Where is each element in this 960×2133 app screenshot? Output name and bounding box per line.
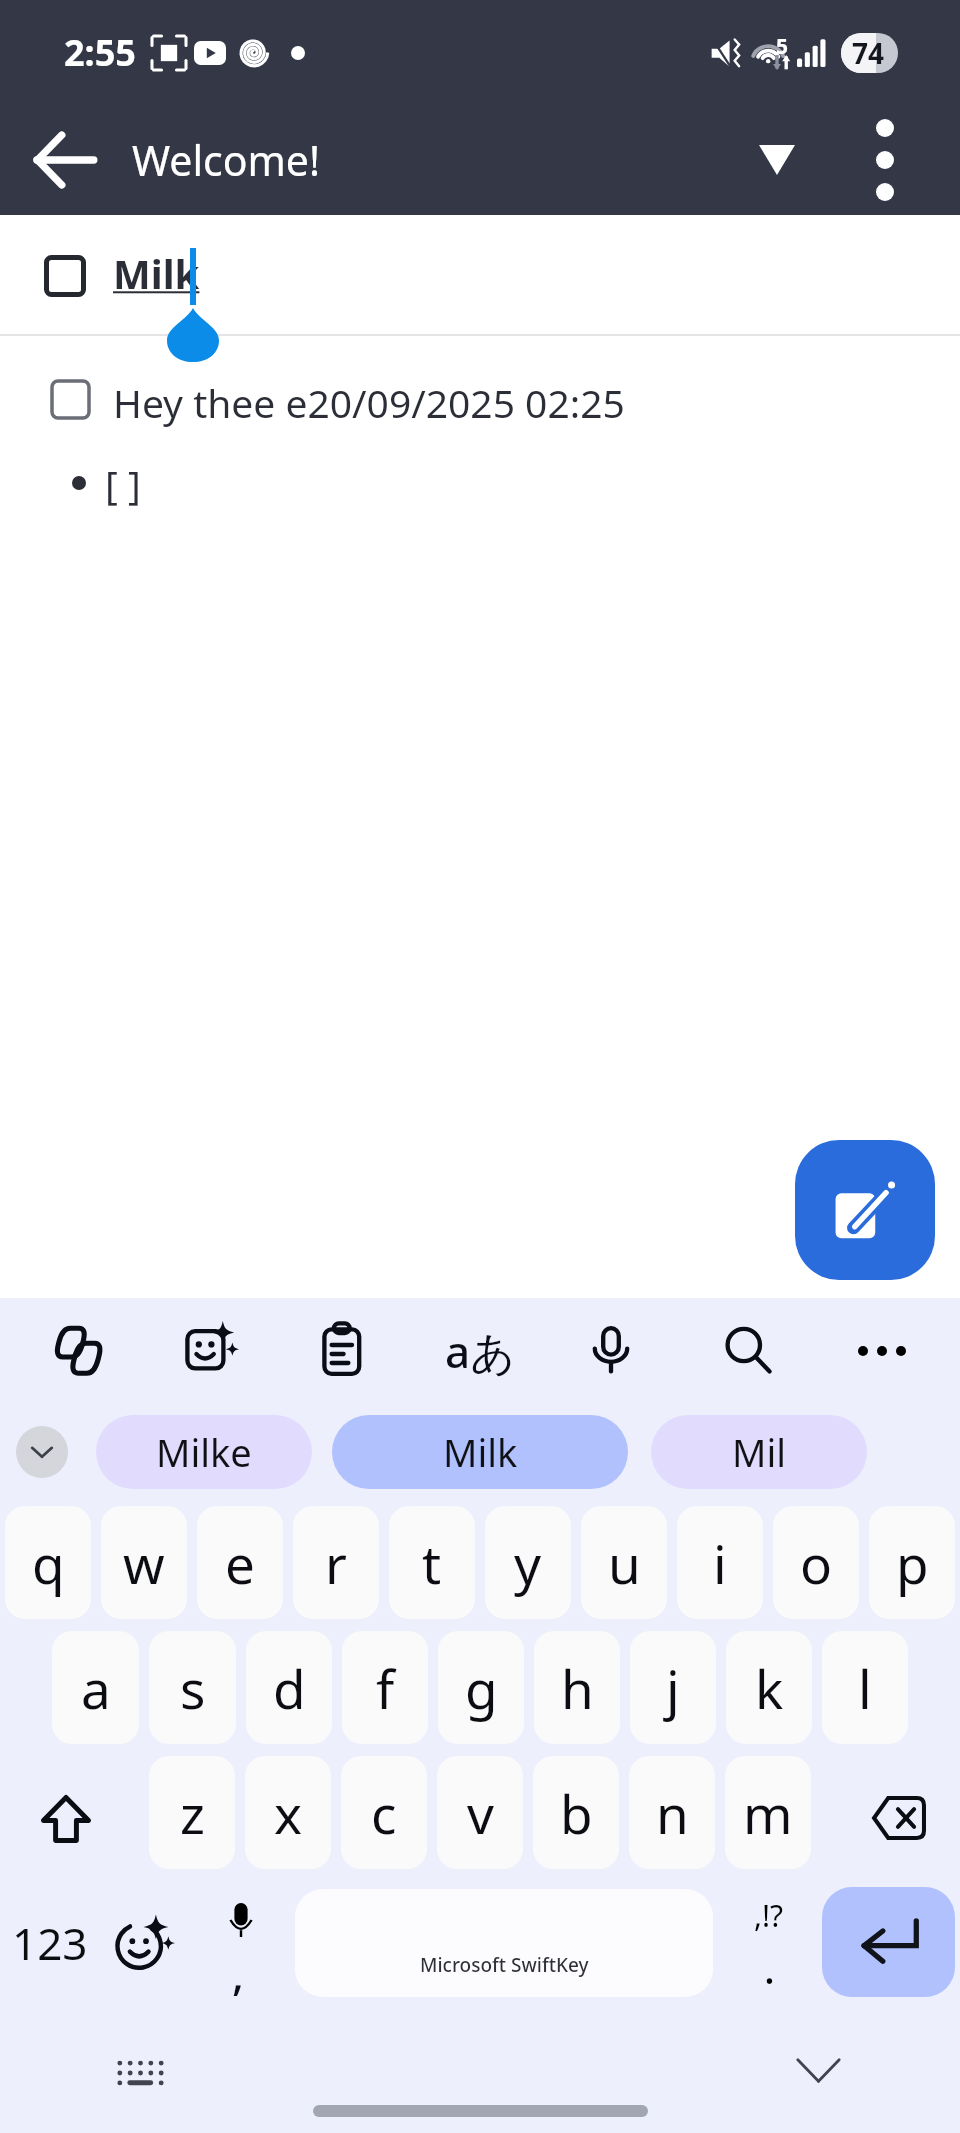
- staticText: p: [896, 1527, 929, 1599]
- staticText: u: [608, 1527, 641, 1599]
- staticText: f: [376, 1652, 395, 1724]
- button[interactable]: w: [101, 1506, 187, 1619]
- staticText: c: [371, 1777, 397, 1849]
- button[interactable]: f: [342, 1631, 428, 1744]
- button[interactable]: Copilot: [11, 1298, 145, 1404]
- staticText: Milk: [113, 246, 200, 300]
- button[interactable]: o: [773, 1506, 859, 1619]
- button[interactable]: g: [438, 1631, 524, 1744]
- staticText: Mil: [732, 1426, 787, 1478]
- button[interactable]: y: [485, 1506, 571, 1619]
- button[interactable]: Milke: [96, 1415, 312, 1489]
- staticText: x: [274, 1777, 303, 1849]
- button[interactable]: Hide keyboard: [768, 2033, 868, 2107]
- button[interactable]: Microsoft SwiftKey: [295, 1889, 713, 1997]
- button[interactable]: New note: [795, 1140, 935, 1280]
- button[interactable]: t: [389, 1506, 475, 1619]
- button[interactable]: p: [869, 1506, 955, 1619]
- staticText: h: [561, 1652, 594, 1724]
- staticText: l: [858, 1652, 872, 1724]
- button[interactable]: n: [629, 1756, 715, 1869]
- staticText: e: [225, 1527, 255, 1599]
- button[interactable]: Emoji: [100, 1875, 192, 2011]
- button[interactable]: Collapse: [724, 105, 829, 215]
- staticText: z: [180, 1777, 205, 1849]
- staticText: o: [800, 1527, 833, 1599]
- staticText: i: [713, 1527, 727, 1599]
- button[interactable]: Clipboard: [279, 1298, 413, 1404]
- button[interactable]: c: [341, 1756, 427, 1869]
- staticText: aあ: [445, 1321, 516, 1381]
- staticText: y: [514, 1527, 542, 1599]
- button[interactable]: a: [52, 1631, 139, 1744]
- button[interactable]: Voice input: [547, 1298, 681, 1404]
- staticText: r: [325, 1527, 347, 1599]
- staticText: a: [81, 1652, 111, 1724]
- button[interactable]: Stickers: [145, 1298, 279, 1404]
- button[interactable]: Shift: [0, 1750, 144, 1875]
- button[interactable]: More: [815, 1298, 949, 1404]
- button[interactable]: Milk: [332, 1415, 628, 1489]
- staticText: b: [560, 1777, 593, 1849]
- button[interactable]: h: [534, 1631, 620, 1744]
- button[interactable]: Keyboard settings: [90, 2036, 190, 2110]
- button[interactable]: s: [149, 1631, 236, 1744]
- staticText: v: [467, 1777, 494, 1849]
- staticText: Hey thee e20/09/2025 02:25: [113, 376, 625, 429]
- button[interactable]: u: [581, 1506, 667, 1619]
- staticText: Welcome!: [132, 132, 320, 188]
- staticText: Microsoft SwiftKey: [420, 1952, 589, 1978]
- button[interactable]: v: [437, 1756, 523, 1869]
- staticText: w: [123, 1527, 165, 1599]
- staticText: [ ]: [105, 457, 141, 510]
- button[interactable]: Expand suggestions: [16, 1426, 68, 1478]
- button[interactable]: i: [677, 1506, 763, 1619]
- staticText: Milk: [443, 1426, 518, 1478]
- staticText: ,: [232, 1943, 245, 2003]
- button[interactable]: Enter: [822, 1887, 955, 1997]
- staticText: k: [755, 1652, 784, 1724]
- staticText: .: [764, 1941, 775, 1995]
- button[interactable]: m: [725, 1756, 811, 1869]
- button[interactable]: Backspace: [816, 1750, 960, 1875]
- button[interactable]: x: [245, 1756, 331, 1869]
- button[interactable]: e: [197, 1506, 283, 1619]
- staticText: m: [743, 1777, 793, 1849]
- staticText: j: [666, 1652, 680, 1724]
- staticText: 123: [12, 1913, 88, 1973]
- button[interactable]: Search: [681, 1298, 815, 1404]
- button[interactable]: l: [822, 1631, 908, 1744]
- button[interactable]: k: [726, 1631, 812, 1744]
- staticText: d: [273, 1652, 306, 1724]
- staticText: s: [180, 1652, 206, 1724]
- staticText: n: [656, 1777, 689, 1849]
- button[interactable]: Voice or comma: [196, 1875, 288, 2011]
- button[interactable]: q: [5, 1506, 91, 1619]
- button[interactable]: 123: [0, 1875, 100, 2011]
- staticText: t: [422, 1527, 442, 1599]
- staticText: q: [32, 1527, 65, 1599]
- button[interactable]: Mil: [651, 1415, 867, 1489]
- button[interactable]: b: [533, 1756, 619, 1869]
- button[interactable]: d: [246, 1631, 332, 1744]
- button[interactable]: Language: [413, 1298, 547, 1404]
- button[interactable]: r: [293, 1506, 379, 1619]
- staticText: 74: [852, 34, 885, 72]
- staticText: g: [465, 1652, 498, 1724]
- staticText: ,!?: [754, 1895, 784, 1936]
- button[interactable]: More options: [829, 105, 941, 215]
- button[interactable]: j: [630, 1631, 716, 1744]
- staticText: Milke: [156, 1426, 252, 1478]
- button[interactable]: Punctuation: [722, 1875, 814, 2011]
- staticText: 5: [776, 32, 789, 61]
- button[interactable]: z: [149, 1756, 235, 1869]
- button[interactable]: Back: [0, 105, 130, 215]
- staticText: 2:55: [64, 28, 136, 77]
